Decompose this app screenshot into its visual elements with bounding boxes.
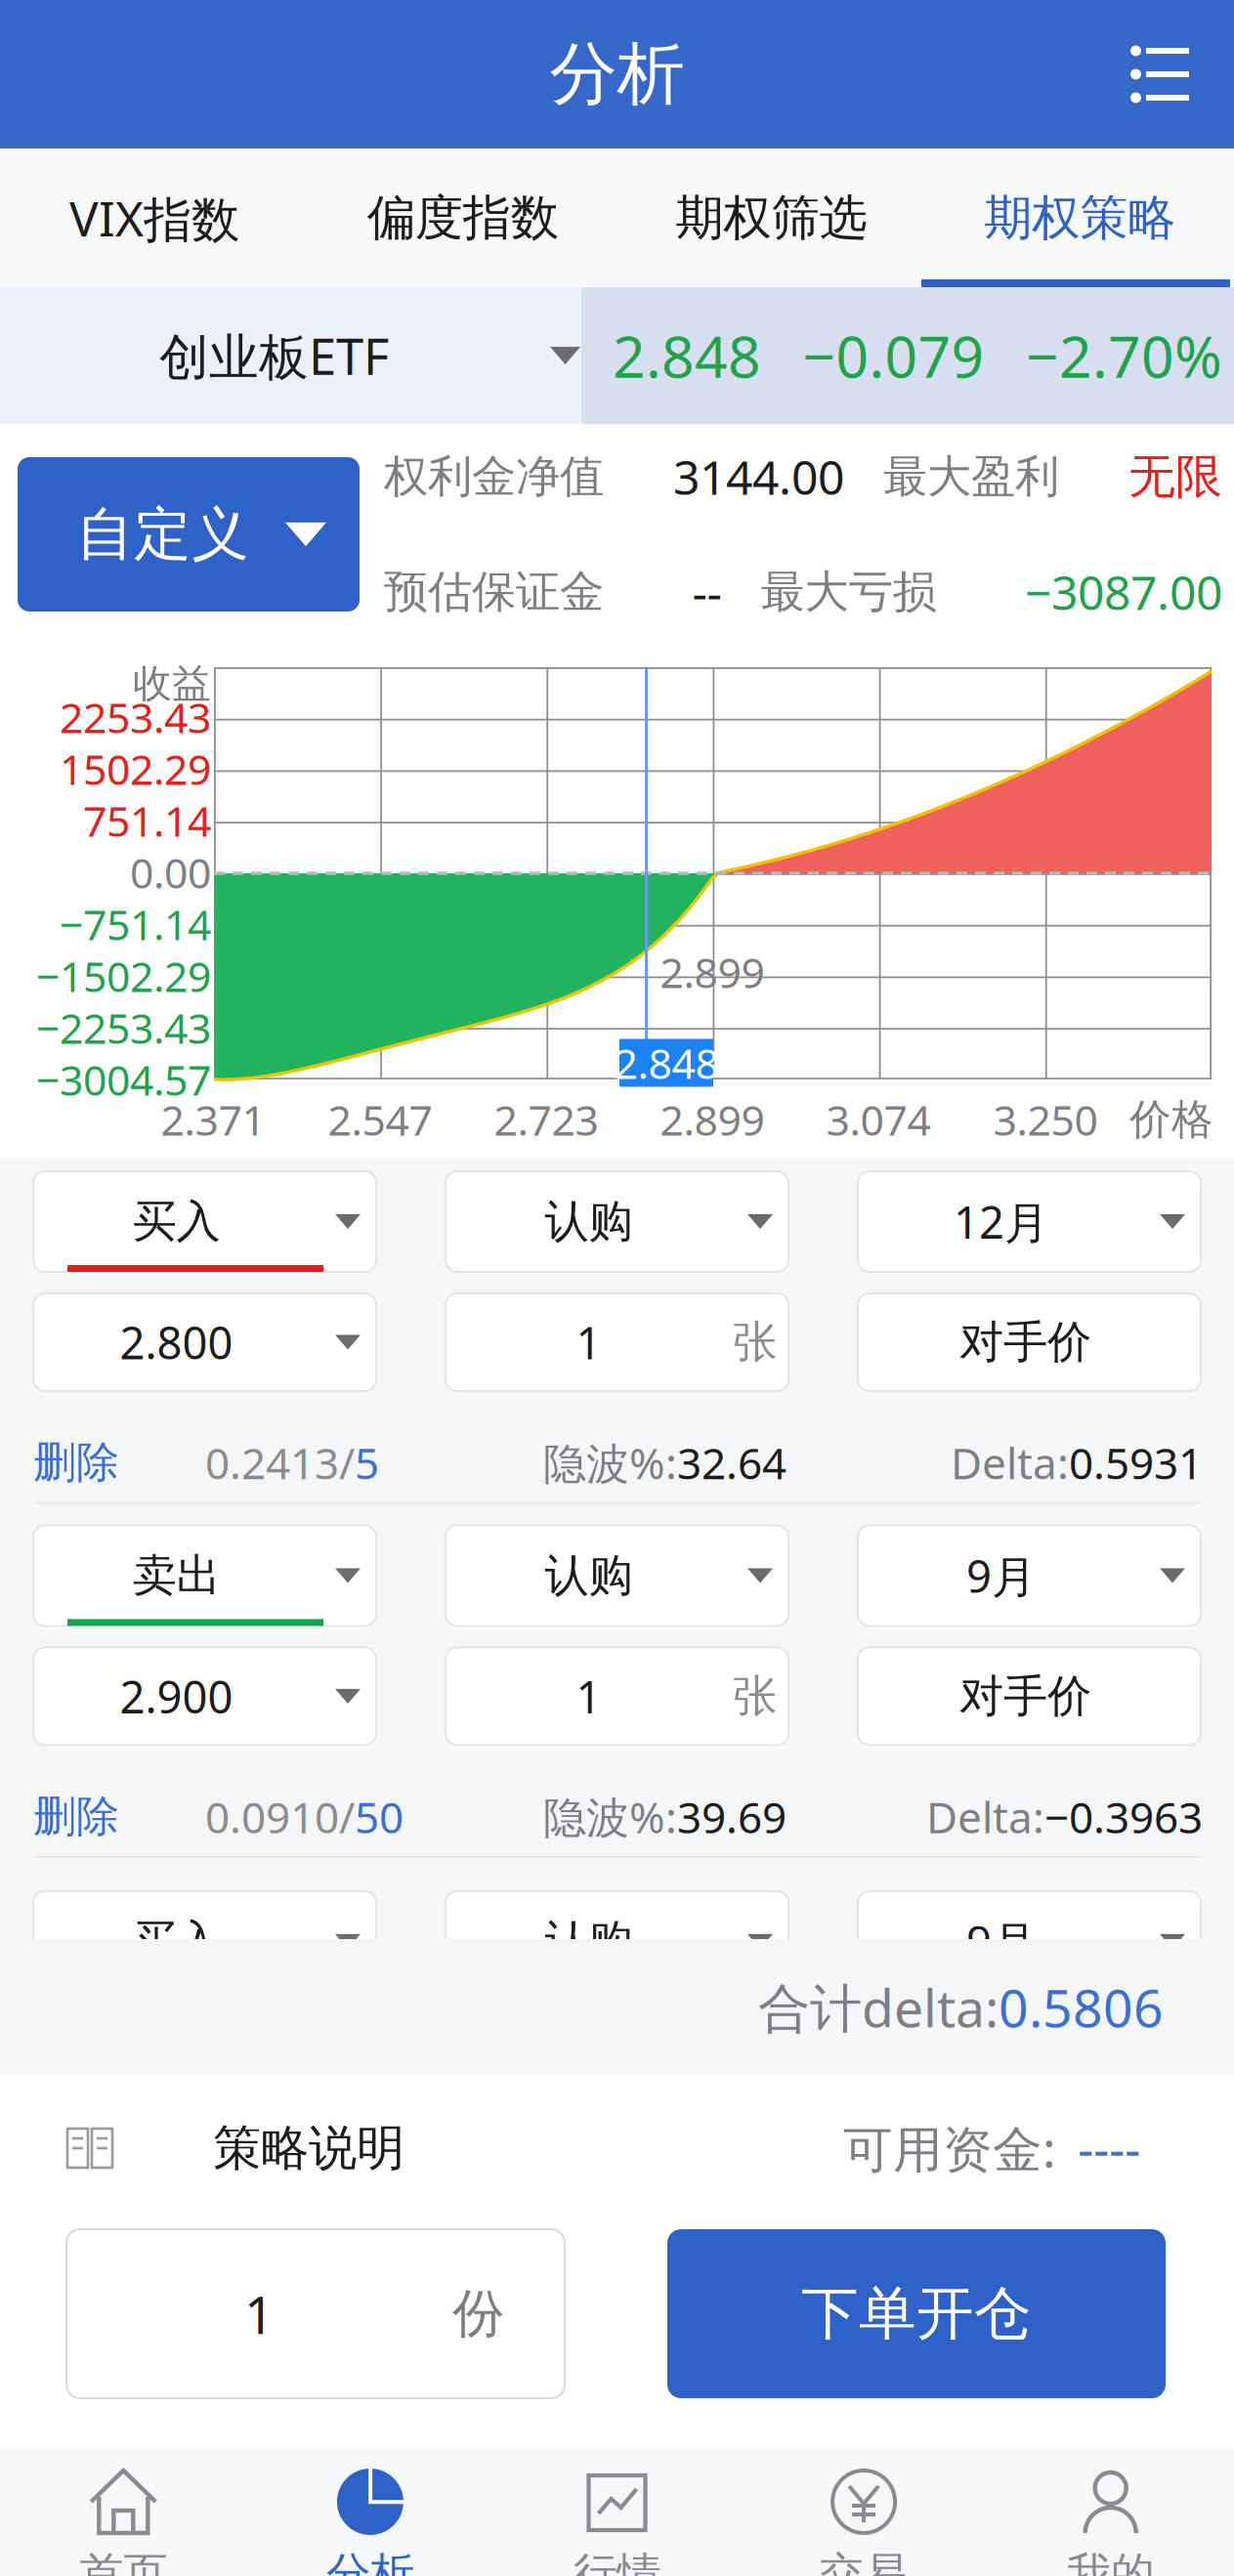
staticText: 行情 [573,2547,661,2576]
button[interactable]: 买入 [33,1171,376,1272]
button[interactable]: 1 [446,1293,788,1391]
staticText: 5 [355,1434,379,1491]
button[interactable]: 创业板ETF [0,287,581,424]
staticText: 卖出 [132,1548,220,1603]
button[interactable]: 期权筛选 [617,148,926,287]
staticText: 0.5931 [1069,1434,1203,1491]
staticText: 1502.29 [60,741,211,797]
button[interactable]: 1 [66,2229,565,2398]
staticText: 合计delta: [758,1972,999,2042]
staticText: 隐波%: [543,1434,677,1491]
staticText: 2.900 [120,1667,233,1726]
staticText: 认购 [545,1914,633,1969]
staticText: Delta: [951,1434,1069,1491]
staticText: 2.848 [614,1035,719,1091]
button[interactable]: 认购 [446,1891,788,1992]
staticText: 认购 [545,1548,633,1603]
staticText: 2.723 [494,1092,598,1147]
button[interactable]: VIX指数 [0,148,309,287]
staticText: 39.69 [677,1788,787,1845]
staticText: 0.00 [130,845,211,900]
button[interactable]: 下单开仓 [667,2229,1166,2398]
button[interactable]: 首页 [0,2449,247,2576]
staticText: 买入 [132,1914,220,1969]
staticText: 权利金净值 [384,450,604,504]
staticText: 收益 [133,660,211,708]
button[interactable]: 删除 [33,1790,119,1843]
button[interactable]: 认购 [446,1525,788,1626]
button[interactable]: 菜单 [1130,45,1234,103]
button[interactable]: 12月 [858,1171,1201,1272]
staticText: 价格 [1129,1094,1213,1145]
button[interactable]: 删除 [33,1436,119,1489]
button[interactable]: 9月 [858,1525,1201,1626]
button[interactable]: 1 [446,1647,788,1745]
button[interactable]: 9月 [858,1891,1201,1992]
button[interactable]: 分析 [247,2449,494,2576]
staticText: 自定义 [76,499,249,570]
staticText: 3.250 [993,1092,1098,1147]
button[interactable]: 策略说明 [0,2119,422,2178]
staticText: −1502.29 [36,948,211,1004]
staticText: 0.2413 [205,1434,339,1491]
staticText: 张 [733,1669,777,1723]
staticText: −0.079 [803,317,984,394]
staticText: −3087.00 [1025,561,1222,623]
staticText: 3.074 [826,1092,931,1147]
button[interactable]: 行情 [494,2449,740,2576]
staticText: 3144.00 [673,446,844,508]
staticText: -- [692,561,722,623]
staticText: 1 [244,2279,275,2348]
staticText: 份 [452,2282,504,2346]
staticText: 2.800 [120,1313,233,1372]
button[interactable]: 买入 [33,1891,376,1992]
staticText: 张 [733,1315,777,1369]
staticText: 买入 [132,1194,220,1249]
staticText: 预估保证金 [384,565,604,619]
staticText: 0.5806 [999,1972,1164,2042]
staticText: 删除 [33,1790,119,1843]
staticText: 策略说明 [213,2119,404,2178]
staticText: 可用资金: [843,2115,1056,2181]
staticText: 对手价 [959,1669,1091,1723]
staticText: Delta: [926,1788,1044,1845]
button[interactable]: 对手价 [858,1293,1201,1391]
staticText: 认购 [545,1194,633,1249]
staticText: 2.547 [328,1092,432,1147]
button[interactable]: 2.900 [33,1647,376,1745]
staticText: 1 [576,1313,601,1372]
staticText: 隐波%: [543,1788,677,1845]
staticText: 2.371 [161,1092,265,1147]
staticText: 首页 [79,2547,167,2576]
staticText: 2.899 [660,1092,765,1147]
staticText: −751.14 [60,896,211,952]
button[interactable]: 2.800 [33,1293,376,1391]
staticText: 751.14 [83,793,211,848]
staticText: 偏度指数 [367,188,558,247]
staticText: / [339,1788,355,1845]
staticText: 2.899 [660,944,765,1000]
staticText: VIX指数 [69,186,239,250]
staticText: 最大盈利 [883,450,1059,504]
button[interactable]: 卖出 [33,1525,376,1626]
staticText: −2253.43 [36,1000,211,1055]
staticText: −0.3963 [1044,1788,1203,1845]
button[interactable]: 认购 [446,1171,788,1272]
staticText: 交易 [820,2547,908,2576]
button[interactable]: 偏度指数 [309,148,617,287]
staticText: 2253.43 [60,689,211,745]
button[interactable]: 自定义 [18,457,360,612]
staticText: 创业板ETF [159,323,389,389]
staticText: 删除 [33,1436,119,1489]
staticText: −3004.57 [36,1052,211,1107]
staticText: 2.848 [613,317,761,394]
staticText: 无限 [1128,448,1222,506]
staticText: 12月 [954,1192,1048,1251]
button[interactable]: 交易 [740,2449,987,2576]
button[interactable]: 我的 [987,2449,1234,2576]
button[interactable]: 对手价 [858,1647,1201,1745]
button[interactable]: 期权策略 [925,148,1234,287]
staticText: 我的 [1067,2547,1155,2576]
staticText: −2.70% [1026,317,1222,394]
staticText: 9月 [966,1546,1036,1605]
